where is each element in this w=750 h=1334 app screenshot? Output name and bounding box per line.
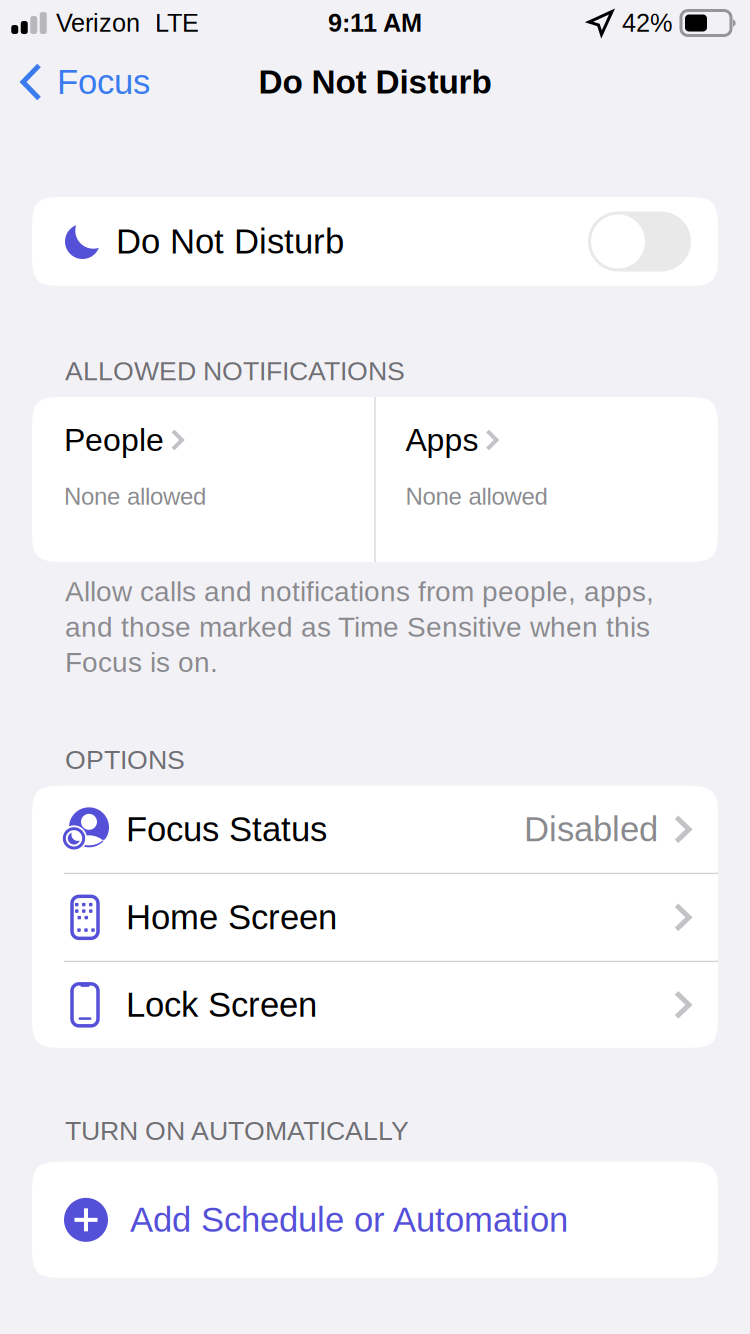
staticText: LTE <box>155 9 199 37</box>
button[interactable]: Focus <box>0 47 170 117</box>
staticText: TURN ON AUTOMATICALLY <box>65 1116 409 1146</box>
staticText: Apps <box>405 422 478 458</box>
staticText: Allow calls and notifications from peopl… <box>65 576 654 678</box>
button[interactable]: Add Schedule or Automation <box>0 1162 750 1278</box>
staticText: Lock Screen <box>126 985 317 1024</box>
button[interactable]: Do Not Disturb <box>588 211 691 271</box>
button[interactable]: Lock Screen <box>32 962 718 1048</box>
staticText: Home Screen <box>126 898 337 937</box>
button[interactable]: Apps <box>375 397 718 562</box>
staticText: OPTIONS <box>65 745 185 775</box>
staticText: Focus <box>57 63 150 101</box>
staticText: Do Not Disturb <box>116 222 344 261</box>
staticText: None allowed <box>405 483 547 510</box>
staticText: Disabled <box>524 810 658 849</box>
staticText: Add Schedule or Automation <box>130 1200 568 1239</box>
staticText: 42% <box>622 9 673 37</box>
staticText: People <box>64 422 164 458</box>
staticText: None allowed <box>64 483 206 510</box>
button[interactable]: Home Screen <box>32 874 718 961</box>
staticText: ALLOWED NOTIFICATIONS <box>65 356 405 386</box>
staticText: Verizon <box>56 9 140 37</box>
staticText: Focus Status <box>126 810 327 849</box>
staticText: 9:11 AM <box>328 9 422 37</box>
button[interactable]: Focus Status <box>32 786 718 873</box>
button[interactable]: People <box>32 397 374 562</box>
staticText: Do Not Disturb <box>258 63 491 101</box>
